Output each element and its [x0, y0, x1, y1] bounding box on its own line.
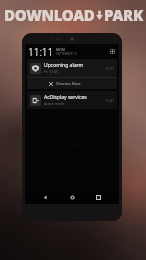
button[interactable]: Recent apps	[93, 192, 104, 203]
button[interactable]: Upcoming alarm	[27, 59, 117, 89]
staticText: SEPTEMBER 12	[56, 52, 77, 56]
staticText: MON	[56, 47, 65, 52]
staticText: 11:11	[28, 45, 54, 59]
button[interactable]: AcDisplay services	[27, 91, 117, 109]
staticText: DOWNLOAD	[4, 5, 95, 25]
staticText: Upcoming alarm	[44, 62, 84, 69]
staticText: 11:11	[105, 66, 114, 71]
button[interactable]: Home	[67, 192, 78, 203]
staticText: PARK	[104, 5, 143, 25]
button[interactable]: Dismiss Now	[27, 78, 117, 89]
staticText: 11:41	[105, 98, 114, 103]
staticText: Active mode	[44, 101, 65, 106]
staticText: Fri 12:45	[44, 69, 59, 74]
button[interactable]: Back	[40, 192, 51, 203]
staticText: Dismiss Now	[56, 81, 81, 86]
staticText: AcDisplay services	[44, 94, 87, 101]
button[interactable]: Settings grid	[109, 48, 116, 55]
